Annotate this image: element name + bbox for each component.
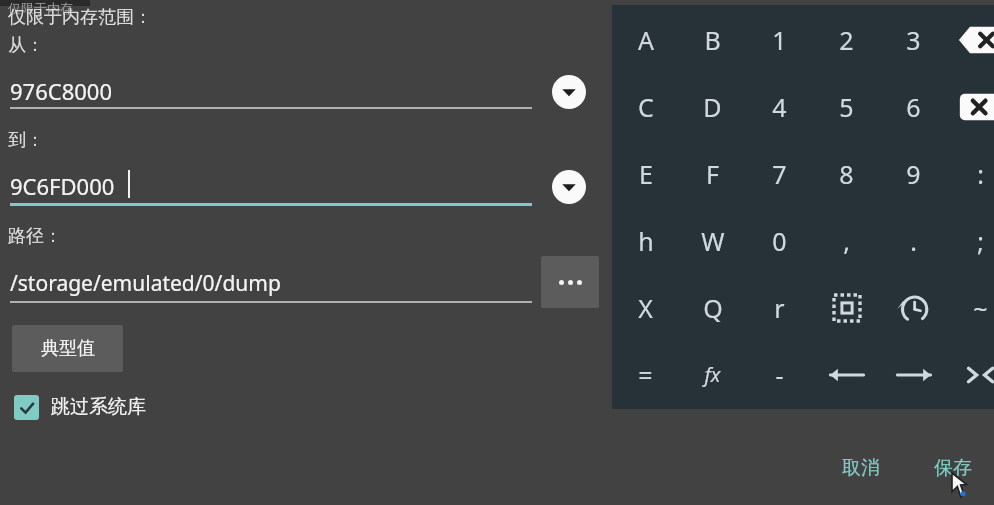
staticText: 3 — [906, 23, 921, 57]
button[interactable]: A — [612, 6, 679, 73]
button[interactable]: 5 — [813, 73, 880, 140]
staticText: X — [638, 291, 653, 325]
button[interactable]: 取消 — [826, 448, 896, 488]
staticText: 仅限于内存范围： — [8, 6, 152, 29]
button[interactable]: 退格 — [947, 6, 994, 73]
staticText: = — [638, 358, 653, 392]
staticText: fx — [704, 361, 721, 388]
staticText: /storage/emulated/0/dump — [10, 269, 281, 298]
button[interactable]: r — [746, 274, 813, 341]
button[interactable]: 展开 — [552, 170, 586, 204]
staticText: Q — [703, 291, 723, 325]
button[interactable]: 3 — [880, 6, 947, 73]
staticText: C — [638, 90, 654, 124]
staticText: 9 — [906, 157, 921, 191]
button[interactable]: 左移 — [813, 341, 880, 408]
button[interactable]: 典型值 — [12, 325, 123, 372]
button[interactable]: 4 — [746, 73, 813, 140]
staticText: 典型值 — [41, 337, 95, 360]
button[interactable]: 保存 — [918, 448, 988, 488]
staticText: , — [843, 224, 850, 258]
staticText: 从： — [8, 34, 44, 57]
staticText: - — [775, 358, 784, 392]
button[interactable]: 7 — [746, 140, 813, 207]
staticText: 路径： — [8, 225, 62, 248]
staticText: 1 — [772, 23, 787, 57]
button[interactable]: ~ — [947, 274, 994, 341]
button[interactable]: , — [813, 207, 880, 274]
staticText: A — [638, 23, 654, 57]
button[interactable]: E — [612, 140, 679, 207]
button[interactable]: : — [947, 140, 994, 207]
button[interactable]: W — [679, 207, 746, 274]
staticText: 6 — [906, 90, 921, 124]
staticText: W — [701, 224, 725, 258]
button[interactable]: 展开 — [552, 75, 586, 109]
staticText: 8 — [839, 157, 854, 191]
staticText: . — [910, 224, 917, 258]
button[interactable]: Q — [679, 274, 746, 341]
staticText: E — [639, 157, 653, 191]
staticText: ; — [977, 224, 984, 258]
staticText: 仅限于内存 — [8, 0, 73, 16]
button[interactable]: X — [612, 274, 679, 341]
staticText: 保存 — [934, 456, 972, 480]
staticText: D — [703, 90, 722, 124]
button[interactable]: C — [612, 73, 679, 140]
staticText: 跳过系统库 — [51, 395, 146, 419]
staticText: 取消 — [842, 456, 880, 480]
button[interactable]: 0 — [746, 207, 813, 274]
button[interactable]: 历史 — [880, 274, 947, 341]
staticText: F — [706, 157, 719, 191]
button[interactable]: . — [880, 207, 947, 274]
staticText: : — [977, 157, 984, 191]
staticText: 7 — [772, 157, 787, 191]
button[interactable]: 9 — [880, 140, 947, 207]
staticText: 到： — [8, 129, 44, 152]
button[interactable]: 折叠 — [947, 341, 994, 408]
button[interactable]: - — [746, 341, 813, 408]
button[interactable]: D — [679, 73, 746, 140]
button[interactable]: h — [612, 207, 679, 274]
staticText: 5 — [839, 90, 854, 124]
button[interactable]: 2 — [813, 6, 880, 73]
staticText: h — [638, 224, 654, 258]
staticText: 2 — [839, 23, 854, 57]
staticText: 0 — [772, 224, 787, 258]
button[interactable]: = — [612, 341, 679, 408]
button[interactable]: ; — [947, 207, 994, 274]
button[interactable]: 6 — [880, 73, 947, 140]
button[interactable]: 1 — [746, 6, 813, 73]
button[interactable]: 全选 — [813, 274, 880, 341]
button[interactable]: 右移 — [880, 341, 947, 408]
button[interactable]: 浏览 — [541, 256, 599, 308]
button[interactable]: 清空 — [947, 73, 994, 140]
button[interactable]: F — [679, 140, 746, 207]
button[interactable]: 跳过系统库 — [14, 392, 146, 422]
staticText: 4 — [772, 90, 787, 124]
button[interactable]: fx — [679, 341, 746, 408]
staticText: B — [704, 23, 721, 57]
button[interactable]: B — [679, 6, 746, 73]
staticText: 9C6FD000 — [10, 171, 115, 201]
staticText: r — [774, 291, 785, 325]
staticText: 976C8000 — [10, 76, 112, 106]
staticText: ~ — [973, 291, 988, 325]
button[interactable]: 8 — [813, 140, 880, 207]
